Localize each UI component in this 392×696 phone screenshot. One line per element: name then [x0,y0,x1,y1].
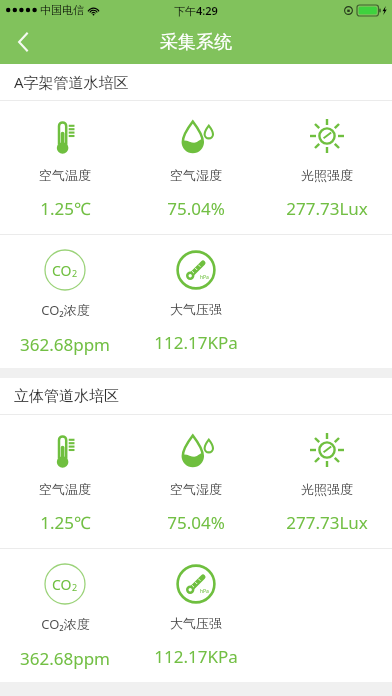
staticText: A字架管道水培区 [14,72,129,92]
staticText: 空气湿度 [170,481,222,497]
staticText: 75.04% [167,197,225,220]
staticText: hPa [200,588,209,595]
button[interactable]: CO [0,559,130,682]
button[interactable]: 立体管道水培区 [0,378,392,414]
staticText: CO₂浓度 [41,615,90,633]
staticText: 采集系统 [160,31,232,54]
button[interactable]: 空气温度 [0,111,130,234]
button[interactable]: CO [0,245,130,368]
staticText: 362.68ppm [20,647,110,670]
staticText: 1.25℃ [40,197,91,220]
staticText: 1.25℃ [40,511,91,534]
staticText: 277.73Lux [286,511,368,534]
staticText: 75.04% [167,511,225,534]
button[interactable]: 空气温度 [0,425,130,548]
button[interactable]: A字架管道水培区 [0,64,392,100]
staticText: 空气温度 [39,167,91,183]
button[interactable]: 光照强度 [261,111,392,234]
button[interactable]: 空气湿度 [130,111,261,234]
button[interactable]: Back [0,20,46,64]
staticText: 中国电信 [40,3,84,17]
staticText: 112.17KPa [154,645,238,668]
staticText: 下午4:29 [174,3,218,18]
staticText: 2 [72,267,78,279]
staticText: 立体管道水培区 [14,387,119,406]
staticText: 空气温度 [39,481,91,497]
staticText: CO₂浓度 [41,301,90,319]
staticText: 大气压强 [170,301,222,317]
staticText: CO [52,575,72,594]
button[interactable]: hPa [130,245,261,368]
staticText: 光照强度 [301,167,353,183]
staticText: 2 [72,581,78,593]
button[interactable]: 光照强度 [261,425,392,548]
staticText: CO [52,261,72,280]
staticText: 空气湿度 [170,167,222,183]
button[interactable]: hPa [130,559,261,682]
staticText: 112.17KPa [154,331,238,354]
button[interactable]: 空气湿度 [130,425,261,548]
staticText: 277.73Lux [286,197,368,220]
staticText: 362.68ppm [20,333,110,356]
staticText: 光照强度 [301,481,353,497]
staticText: 大气压强 [170,615,222,631]
staticText: hPa [200,274,209,281]
